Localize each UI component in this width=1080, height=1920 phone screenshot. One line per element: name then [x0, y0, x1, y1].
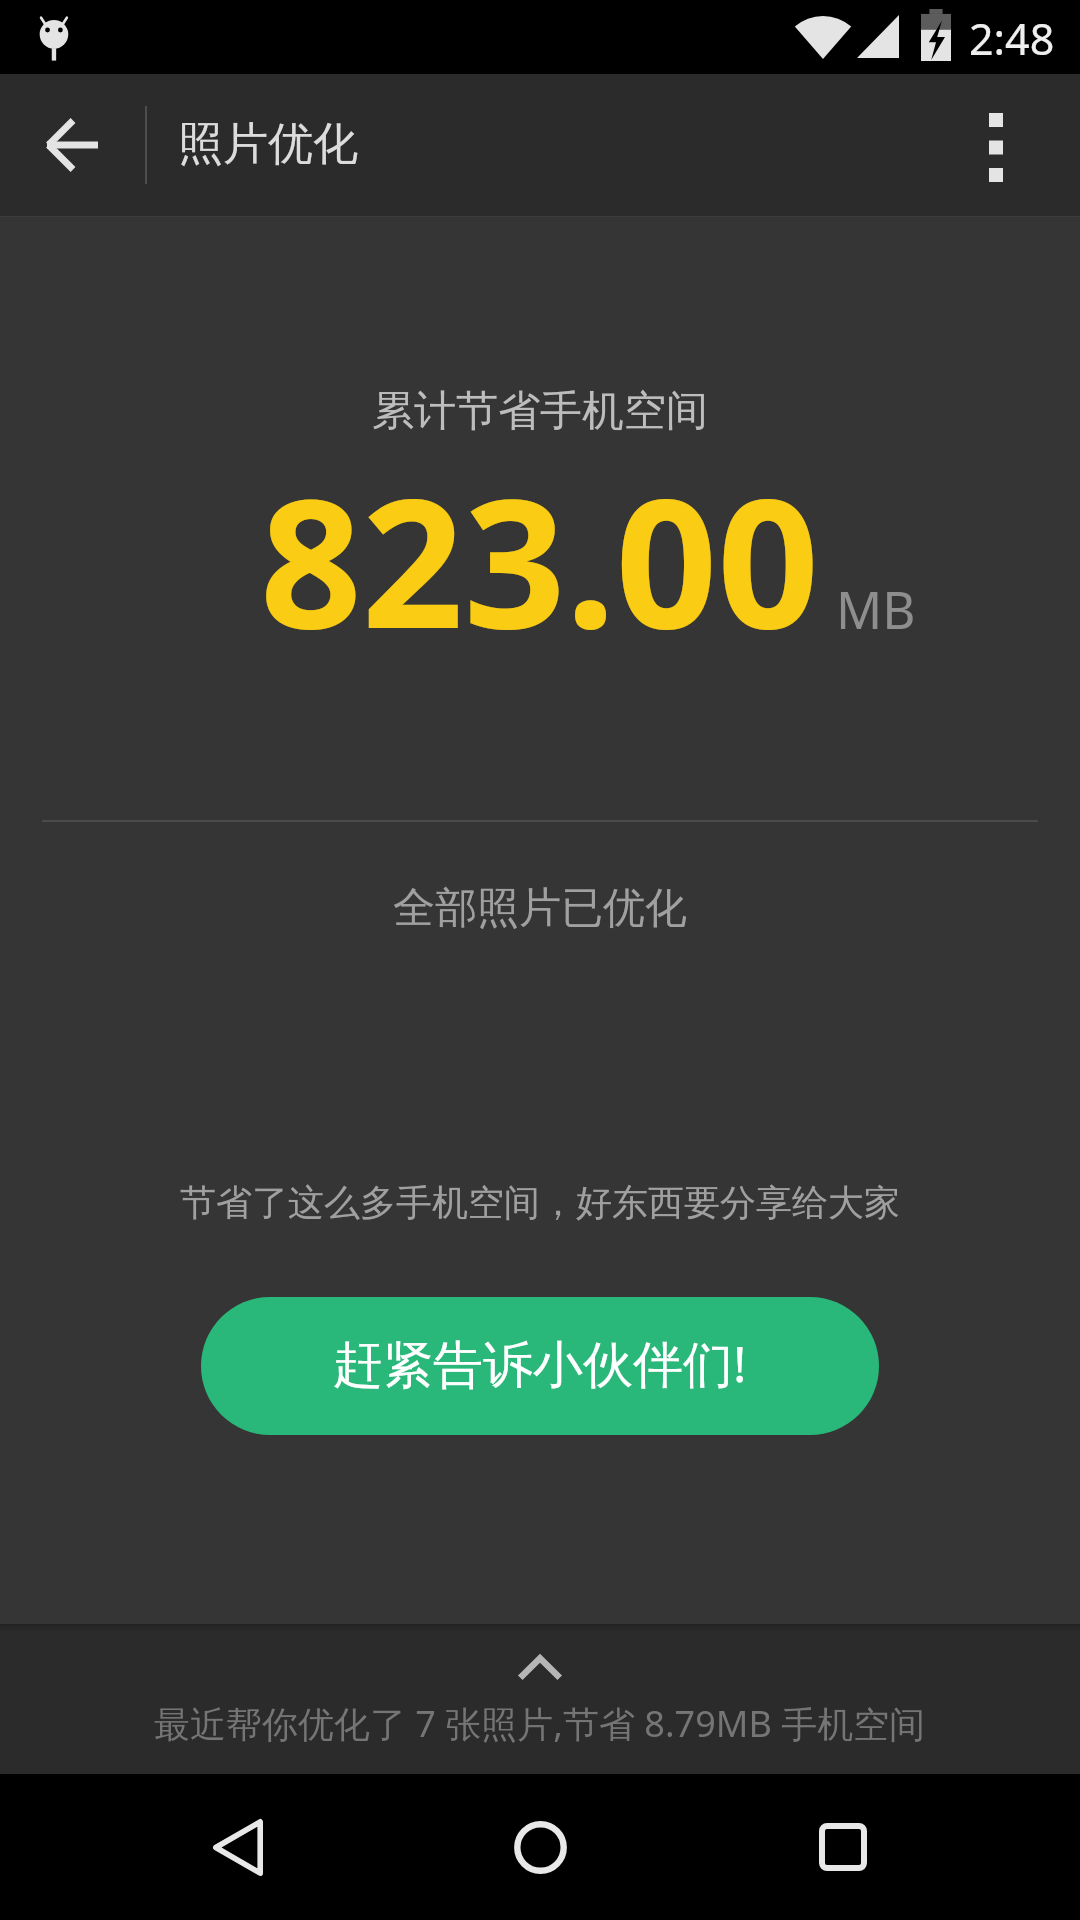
staticText: 赶紧告诉小伙伴们!	[333, 1329, 747, 1397]
button[interactable]: Home	[475, 1782, 605, 1912]
button[interactable]: 最近帮你优化了 7 张照片,节省 8.79MB 手机空间	[0, 1624, 1080, 1774]
button[interactable]: More options	[941, 90, 1051, 200]
staticText: 累计节省手机空间	[372, 385, 708, 438]
staticText: 照片优化	[178, 116, 358, 173]
staticText: MB	[836, 574, 916, 643]
button[interactable]: Back	[173, 1782, 303, 1912]
staticText: 全部照片已优化	[393, 882, 687, 935]
staticText: 2:48	[969, 9, 1055, 68]
staticText: 节省了这么多手机空间，好东西要分享给大家	[180, 1180, 900, 1225]
staticText: 最近帮你优化了 7 张照片,节省 8.79MB 手机空间	[154, 1699, 926, 1748]
button[interactable]: Back	[14, 87, 130, 203]
staticText: 823.00	[260, 438, 820, 680]
button[interactable]: Recent apps	[778, 1782, 908, 1912]
button[interactable]: 赶紧告诉小伙伴们!	[201, 1297, 879, 1435]
